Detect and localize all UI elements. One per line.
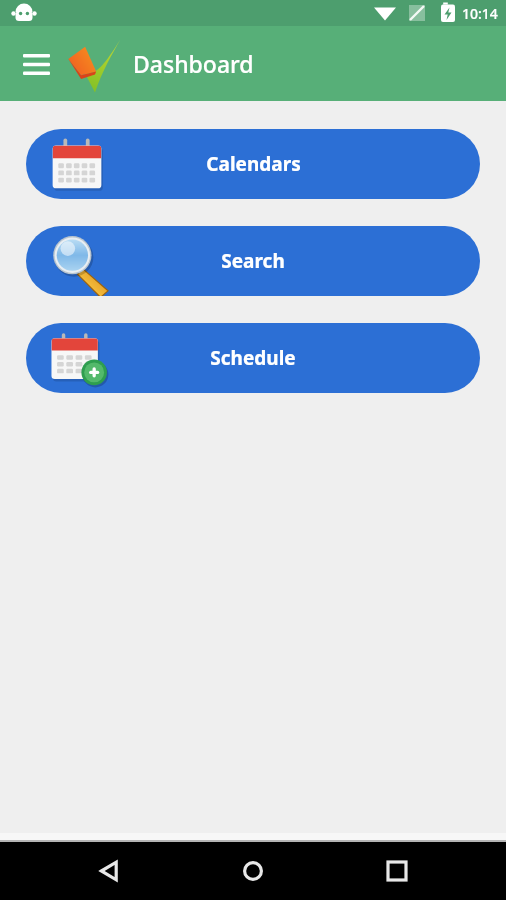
staticText: Calendars	[206, 151, 301, 177]
button[interactable]: Back	[74, 842, 144, 900]
staticText: Dashboard	[133, 48, 254, 79]
button[interactable]: Open navigation menu	[10, 38, 62, 90]
button[interactable]: Recent apps	[362, 842, 432, 900]
button[interactable]: Calendars	[26, 129, 480, 199]
staticText: Search	[221, 248, 285, 274]
button[interactable]: Home	[218, 842, 288, 900]
staticText: Schedule	[210, 345, 296, 371]
button[interactable]: Search	[26, 226, 480, 296]
button[interactable]: Schedule	[26, 323, 480, 393]
staticText: 10:14	[462, 4, 498, 23]
